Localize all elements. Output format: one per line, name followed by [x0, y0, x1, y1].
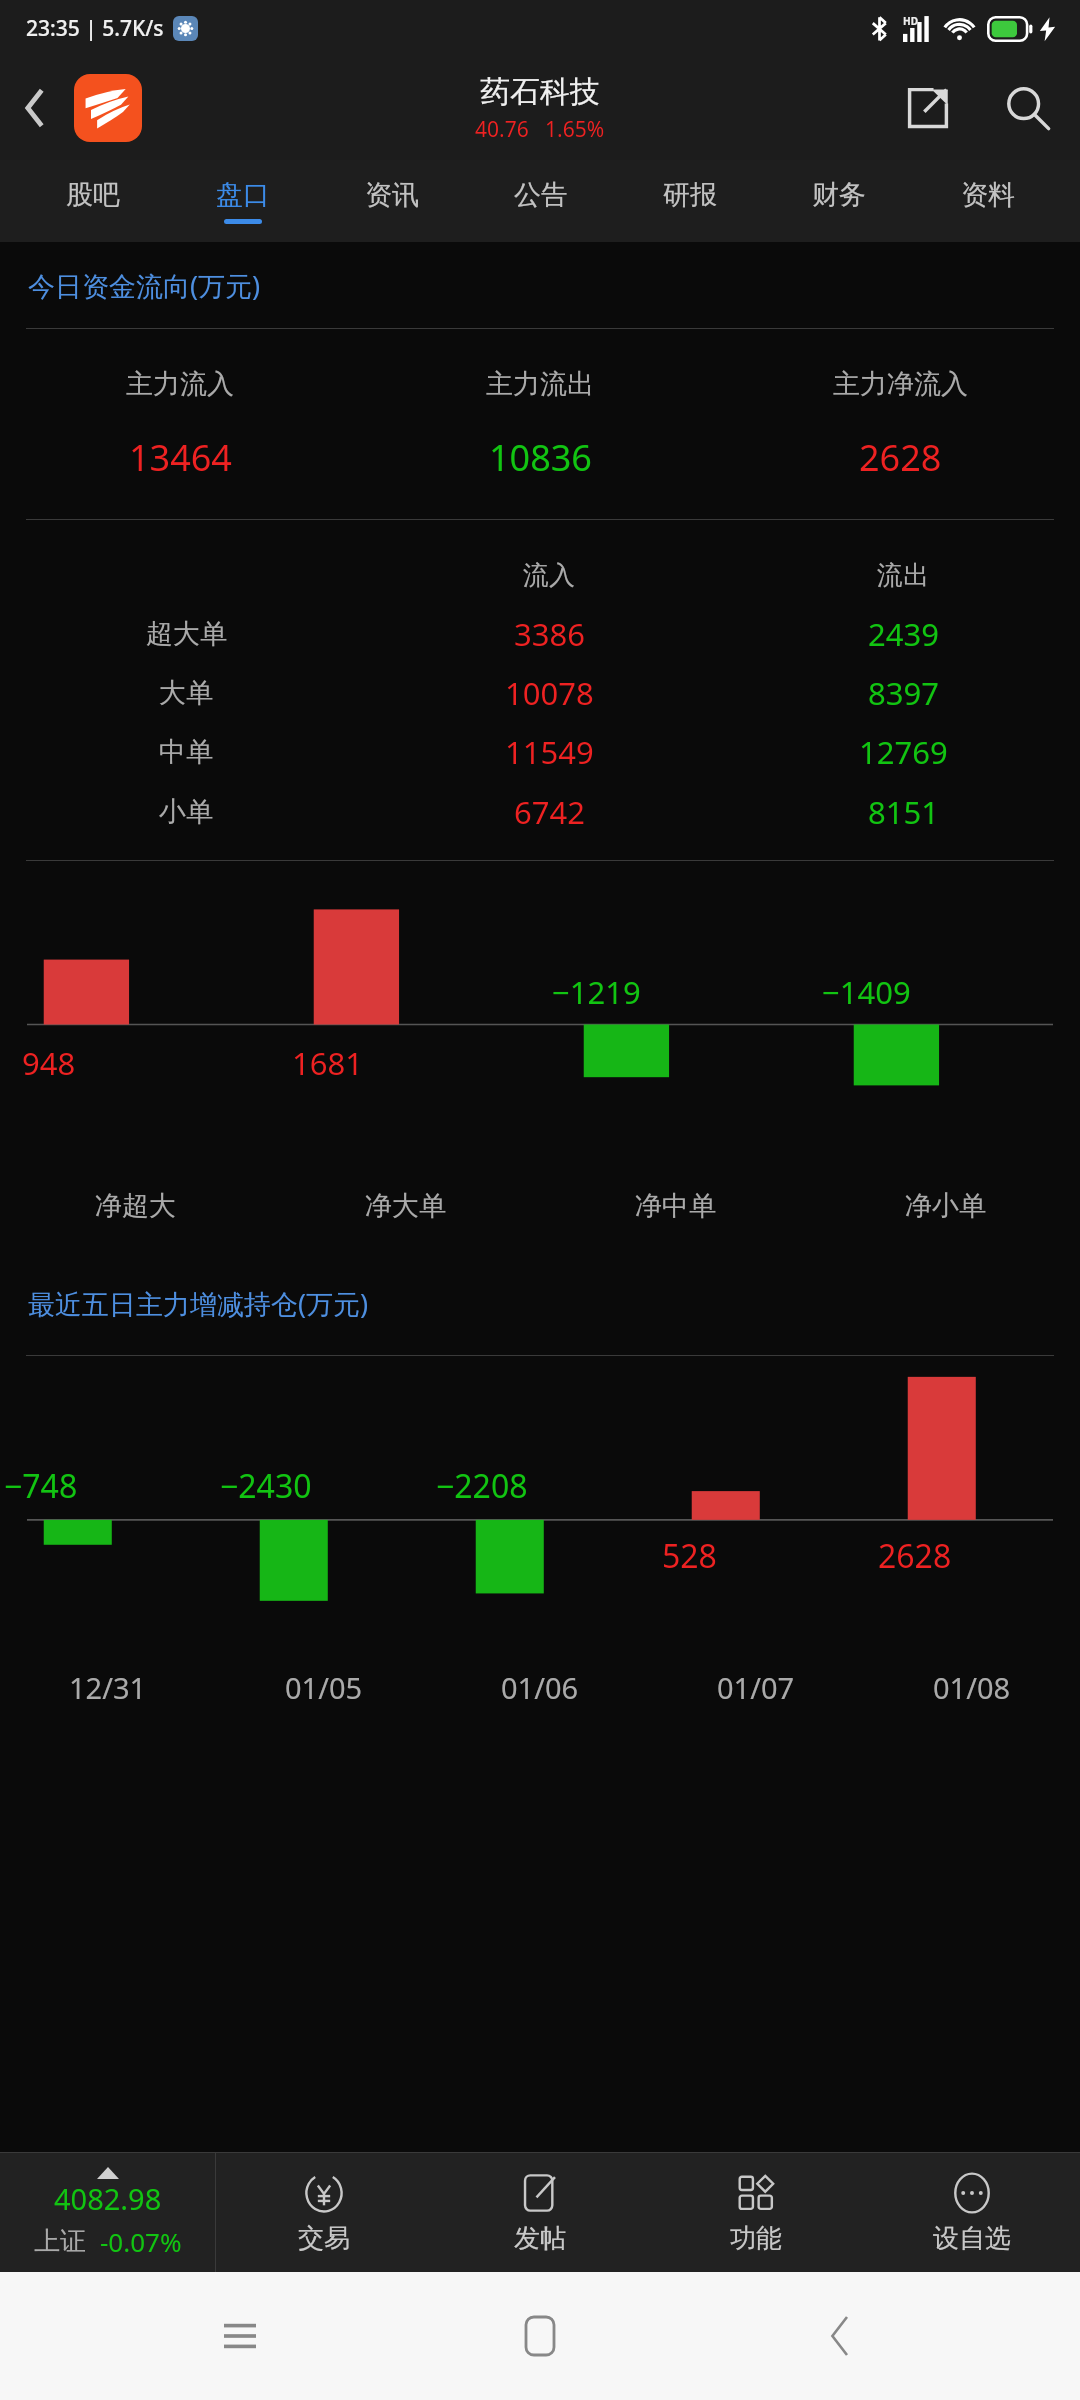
staticText: -0.07% [100, 2224, 182, 2259]
staticText: 净小单 [905, 1189, 986, 1223]
staticText: 流出 [877, 559, 929, 592]
button[interactable]: 设自选 [864, 2153, 1080, 2272]
staticText: 资料 [961, 178, 1015, 212]
button[interactable]: 交易 [216, 2153, 432, 2272]
staticText: 40.76 [475, 115, 529, 144]
staticText: −2430 [220, 1464, 312, 1508]
staticText: 小单 [159, 795, 213, 829]
button[interactable]: 4082.98 [0, 2153, 215, 2272]
button[interactable]: Share [880, 56, 976, 160]
staticText: 功能 [730, 2222, 782, 2255]
staticText: 12/31 [69, 1668, 147, 1707]
button[interactable]: 公告 [466, 160, 615, 242]
staticText: 设自选 [933, 2222, 1011, 2255]
button[interactable]: Search [976, 56, 1080, 160]
staticText: 超大单 [146, 617, 227, 651]
staticText: 3386 [514, 613, 585, 655]
staticText: 研报 [663, 178, 717, 212]
staticText: 股吧 [66, 178, 120, 212]
button[interactable]: 发帖 [432, 2153, 648, 2272]
button[interactable]: Recents [180, 2272, 300, 2400]
button[interactable]: Home [480, 2272, 600, 2400]
staticText: 上证 [34, 2225, 86, 2258]
staticText: 流入 [523, 559, 575, 592]
button[interactable]: 股吧 [18, 160, 168, 242]
button[interactable]: 研报 [615, 160, 764, 242]
staticText: 药石科技 [480, 73, 600, 111]
staticText: −1219 [552, 971, 641, 1013]
staticText: 01/07 [717, 1668, 795, 1707]
button[interactable]: 资料 [913, 160, 1062, 242]
staticText: −1409 [822, 971, 911, 1013]
button[interactable]: 资讯 [317, 160, 466, 242]
staticText: 8151 [868, 791, 939, 833]
staticText: 11549 [505, 731, 594, 773]
staticText: 净中单 [635, 1189, 716, 1223]
staticText: 6742 [514, 791, 585, 833]
staticText: 盘口 [216, 178, 270, 212]
staticText: 2628 [878, 1534, 952, 1578]
staticText: 财务 [812, 178, 866, 212]
staticText: 10836 [489, 433, 592, 482]
staticText: HD [903, 14, 918, 28]
staticText: 2439 [868, 613, 939, 655]
staticText: 公告 [514, 178, 568, 212]
staticText: 1.65% [545, 115, 605, 144]
button[interactable]: 盘口 [168, 160, 317, 242]
staticText: 今日资金流向(万元) [28, 267, 261, 304]
staticText: 4082.98 [54, 2179, 162, 2218]
staticText: 01/08 [933, 1668, 1011, 1707]
staticText: 主力流入 [126, 367, 234, 401]
button[interactable]: App logo [74, 74, 142, 142]
staticText: 主力净流入 [833, 367, 968, 401]
staticText: −748 [4, 1464, 78, 1508]
staticText: 发帖 [514, 2222, 566, 2255]
button[interactable]: Back [0, 56, 70, 160]
button[interactable]: Back [780, 2272, 900, 2400]
button[interactable]: 功能 [648, 2153, 864, 2272]
staticText: 1681 [292, 1042, 363, 1084]
staticText: 大单 [159, 676, 213, 710]
staticText: 8397 [868, 672, 939, 714]
staticText: 净超大 [95, 1189, 176, 1223]
staticText: 01/05 [285, 1668, 363, 1707]
staticText: 23:35 | 5.7K/s [26, 14, 164, 43]
staticText: 528 [662, 1534, 717, 1578]
staticText: 12769 [859, 731, 948, 773]
staticText: 净大单 [365, 1189, 446, 1223]
staticText: 948 [22, 1042, 76, 1084]
staticText: 最近五日主力增减持仓(万元) [28, 1285, 369, 1322]
staticText: 资讯 [365, 178, 419, 212]
staticText: −2208 [436, 1464, 528, 1508]
staticText: 交易 [298, 2222, 350, 2255]
staticText: 2628 [859, 433, 942, 482]
staticText: 13464 [129, 433, 232, 482]
staticText: 01/06 [501, 1668, 579, 1707]
staticText: 中单 [159, 735, 213, 769]
staticText: 主力流出 [486, 367, 594, 401]
staticText: 10078 [505, 672, 594, 714]
button[interactable]: 财务 [764, 160, 913, 242]
